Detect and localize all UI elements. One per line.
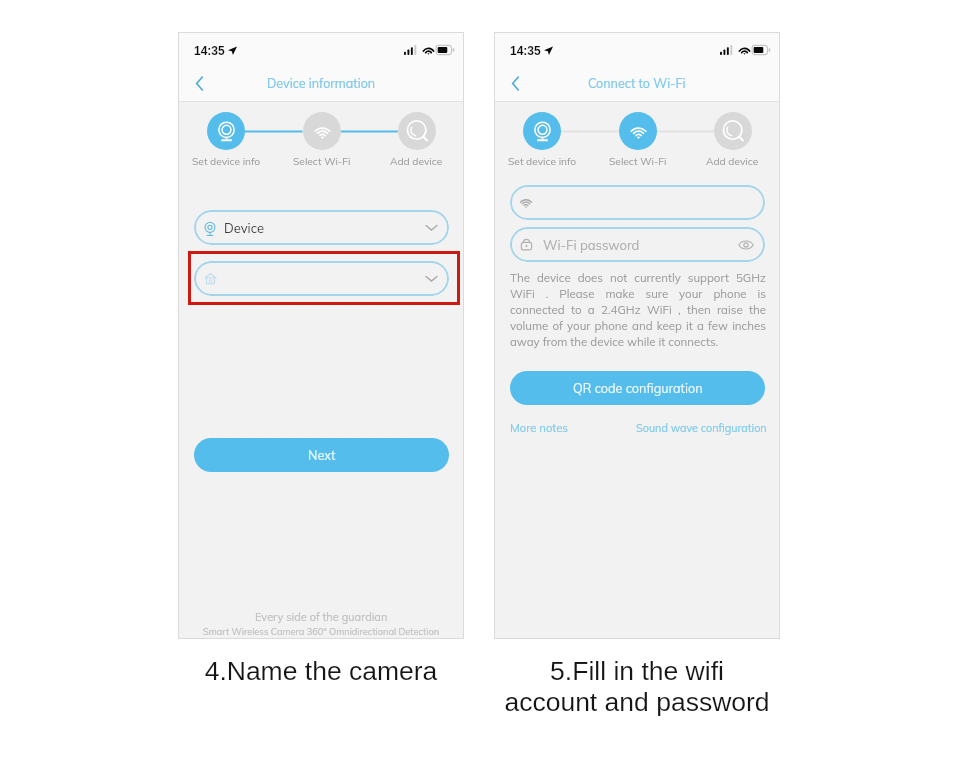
button[interactable]	[194, 261, 449, 296]
button[interactable]: Next	[194, 438, 449, 472]
button[interactable]: Back	[185, 69, 213, 97]
button[interactable]: More notes	[510, 417, 568, 439]
button[interactable]: Sound wave configuration	[636, 417, 767, 439]
staticText: Every side of the guardian	[255, 610, 388, 624]
staticText: Add device	[390, 155, 443, 168]
staticText: QR code configuration	[573, 380, 703, 396]
button[interactable]: Back	[501, 69, 529, 97]
staticText: Set device info	[192, 155, 261, 168]
staticText: 14:35	[510, 44, 541, 57]
staticText: Select Wi-Fi	[609, 155, 667, 168]
button[interactable]: Select Wi-Fi	[274, 112, 369, 168]
staticText: Select Wi-Fi	[293, 155, 351, 168]
staticText: Smart Wireless Camera 360° Omnidirection…	[203, 626, 440, 638]
button[interactable]: Select Wi-Fi	[590, 112, 685, 168]
staticText: Set device info	[508, 155, 577, 168]
staticText: Device	[224, 220, 265, 236]
staticText: Connect to Wi-Fi	[588, 75, 686, 91]
button[interactable]: Show password	[733, 232, 759, 258]
staticText: Sound wave configuration	[636, 421, 767, 435]
button[interactable]: Set device info	[178, 112, 274, 168]
button[interactable]: Wi-Fi password	[510, 227, 765, 262]
button[interactable]: Set device info	[494, 112, 590, 168]
staticText: Wi-Fi password	[543, 237, 640, 253]
button[interactable]: Add device	[369, 112, 464, 168]
staticText: Next	[308, 447, 336, 463]
button[interactable]: Device	[194, 210, 449, 245]
staticText: The device does not currently support 5G…	[510, 270, 766, 349]
button[interactable]: QR code configuration	[510, 371, 765, 405]
button[interactable]	[510, 185, 765, 220]
staticText: 5.Fill in the wifi account and password	[464, 656, 810, 717]
staticText: Add device	[706, 155, 759, 168]
staticText: 14:35	[194, 44, 225, 57]
staticText: 4.Name the camera	[148, 656, 494, 686]
staticText: More notes	[510, 421, 568, 435]
button[interactable]: Add device	[685, 112, 780, 168]
staticText: Device information	[267, 75, 376, 91]
